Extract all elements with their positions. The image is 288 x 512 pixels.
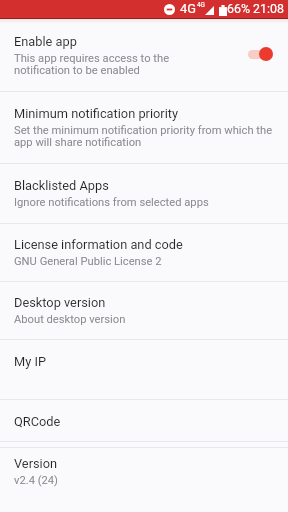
button[interactable]: Blacklisted Apps <box>0 164 288 223</box>
staticText: Ignore notifications from selected apps <box>14 197 209 209</box>
staticText: Desktop version <box>14 295 106 310</box>
staticText: About desktop version <box>14 314 126 326</box>
button[interactable]: Desktop version <box>0 282 288 339</box>
button[interactable]: Enable app <box>0 18 288 91</box>
button[interactable]: My IP <box>0 340 288 399</box>
staticText: My IP <box>14 354 46 369</box>
button[interactable]: Minimum notification priority <box>0 92 288 163</box>
staticText: Blacklisted Apps <box>14 178 109 193</box>
button[interactable]: License information and code <box>0 224 288 281</box>
button[interactable]: QRCode <box>0 400 288 441</box>
staticText: This app requires access to the notifica… <box>14 53 170 77</box>
staticText: Set the minimum notification priority fr… <box>14 125 273 149</box>
staticText: 4G <box>197 1 205 8</box>
staticText: 4G <box>180 2 196 16</box>
button[interactable]: Enable app <box>248 44 276 64</box>
staticText: Version <box>14 456 58 471</box>
staticText: QRCode <box>14 414 61 429</box>
staticText: Enable app <box>14 34 77 49</box>
button[interactable]: Version <box>0 448 288 500</box>
staticText: v2.4 (24) <box>14 475 59 487</box>
staticText: 66% 21:08 <box>227 2 284 16</box>
staticText: GNU General Public License 2 <box>14 256 162 268</box>
staticText: Minimum notification priority <box>14 106 179 121</box>
staticText: License information and code <box>14 237 183 252</box>
